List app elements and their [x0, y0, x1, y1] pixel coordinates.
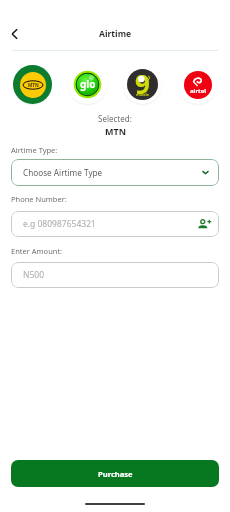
button[interactable]: Back [3, 22, 27, 46]
button[interactable]: e.g 080987654321 [11, 211, 219, 237]
button[interactable]: Airtel [177, 64, 218, 105]
staticText: 9 [135, 69, 150, 97]
staticText: Choose Airtime Type [23, 167, 103, 178]
staticText: Enter Amount: [11, 246, 63, 256]
staticText: N500 [23, 269, 45, 281]
button[interactable]: Pick contact [198, 218, 211, 231]
button[interactable]: MTN [12, 64, 53, 105]
button[interactable]: Choose Airtime Type [11, 159, 219, 186]
staticText: glo [80, 77, 96, 91]
staticText: Selected: [98, 113, 132, 124]
button[interactable]: N500 [11, 262, 219, 288]
button[interactable]: Glo [67, 64, 108, 105]
button[interactable]: Purchase [11, 460, 219, 487]
staticText: mobile [136, 92, 149, 97]
staticText: Purchase [98, 469, 133, 479]
staticText: airtel [190, 87, 207, 95]
staticText: Airtime [99, 28, 132, 40]
staticText: e.g 080987654321 [23, 218, 96, 230]
staticText: Phone Number: [11, 194, 67, 204]
staticText: Airtime Type: [11, 145, 58, 155]
staticText: MTN [105, 125, 126, 137]
button[interactable]: 9mobile [122, 64, 163, 105]
staticText: MTN [28, 82, 39, 88]
